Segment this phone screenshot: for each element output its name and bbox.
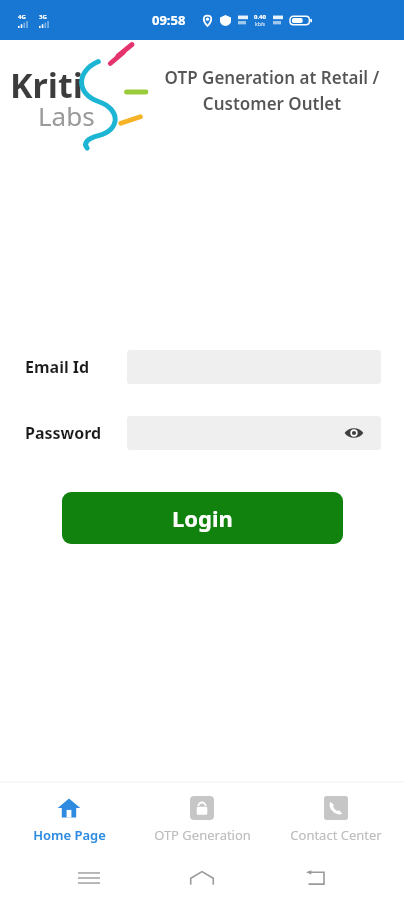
staticText: OTP Generation at Retail / Customer Outl… bbox=[147, 66, 397, 115]
button[interactable]: Back bbox=[291, 856, 339, 900]
staticText: 3G bbox=[39, 13, 47, 21]
staticText: 4G bbox=[18, 13, 26, 21]
staticText: kb/s bbox=[255, 21, 266, 28]
staticText: Login bbox=[172, 503, 233, 533]
staticText: OTP Generation bbox=[154, 826, 251, 844]
button[interactable]: Show password bbox=[127, 416, 381, 450]
button[interactable]: Contact Center bbox=[271, 795, 401, 844]
staticText: 09:58 bbox=[152, 11, 186, 29]
button[interactable]: Recent apps bbox=[65, 856, 113, 900]
staticText: Email Id bbox=[25, 356, 90, 378]
button[interactable]: Home bbox=[178, 856, 226, 900]
button[interactable]: Home Page bbox=[4, 795, 134, 844]
staticText: Home Page bbox=[33, 826, 106, 844]
button[interactable]: Login bbox=[62, 492, 343, 544]
staticText: Labs bbox=[38, 98, 95, 133]
staticText: Contact Center bbox=[290, 826, 382, 844]
staticText: Kriti bbox=[10, 62, 83, 108]
button[interactable]: OTP Generation bbox=[137, 795, 267, 844]
staticText: 0.40 bbox=[254, 13, 266, 21]
staticText: Password bbox=[25, 422, 102, 444]
button[interactable]: Show password bbox=[341, 420, 367, 446]
